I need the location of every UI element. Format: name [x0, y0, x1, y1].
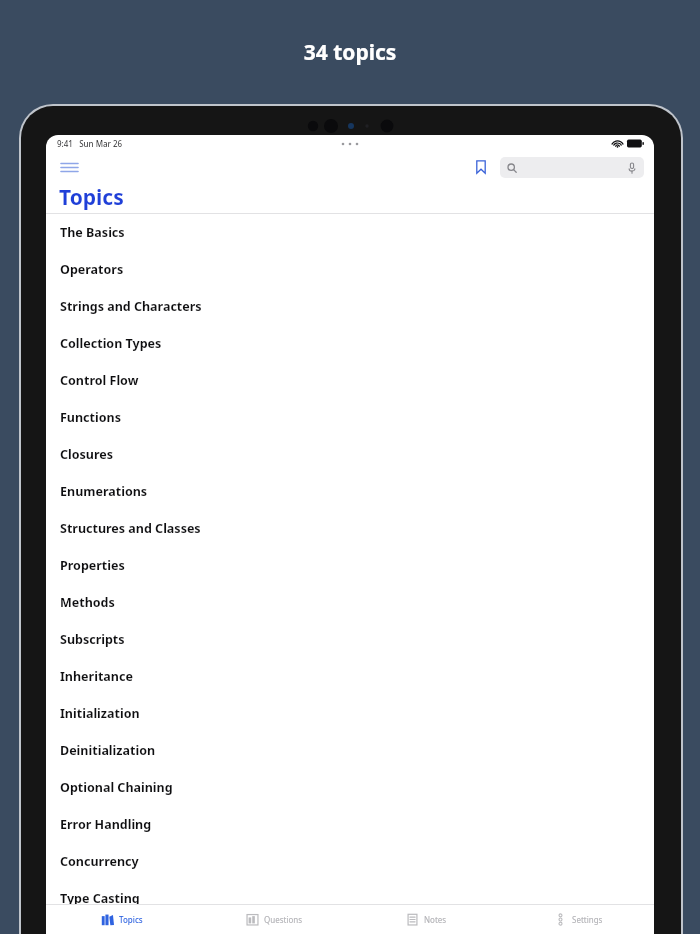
- button[interactable]: Operators: [46, 251, 654, 288]
- button[interactable]: Methods: [46, 584, 654, 621]
- button[interactable]: The Basics: [46, 214, 654, 251]
- staticText: Subscripts: [60, 631, 125, 648]
- button[interactable]: Properties: [46, 547, 654, 584]
- staticText: Properties: [60, 557, 125, 574]
- staticText: Type Casting: [60, 890, 140, 907]
- button[interactable]: Type Casting: [46, 880, 654, 917]
- staticText: Concurrency: [60, 853, 139, 870]
- button[interactable]: Error Handling: [46, 806, 654, 843]
- button[interactable]: Functions: [46, 399, 654, 436]
- button[interactable]: Search: [500, 157, 644, 178]
- button[interactable]: Notes: [350, 905, 502, 934]
- staticText: Inheritance: [60, 668, 133, 685]
- staticText: Topics: [119, 914, 143, 925]
- staticText: Strings and Characters: [60, 298, 202, 315]
- button[interactable]: Concurrency: [46, 843, 654, 880]
- staticText: Operators: [60, 261, 124, 278]
- button[interactable]: Subscripts: [46, 621, 654, 658]
- staticText: Enumerations: [60, 483, 148, 500]
- staticText: Control Flow: [60, 372, 139, 389]
- staticText: Notes: [424, 914, 447, 925]
- button[interactable]: Control Flow: [46, 362, 654, 399]
- button[interactable]: Strings and Characters: [46, 288, 654, 325]
- button[interactable]: Menu: [54, 152, 84, 182]
- staticText: Closures: [60, 446, 114, 463]
- button[interactable]: Bookmarks: [468, 154, 494, 180]
- button[interactable]: Inheritance: [46, 658, 654, 695]
- staticText: Optional Chaining: [60, 779, 173, 796]
- button[interactable]: Enumerations: [46, 473, 654, 510]
- staticText: 9:41 Sun Mar 26: [57, 138, 123, 149]
- staticText: Error Handling: [60, 816, 152, 833]
- staticText: The Basics: [60, 224, 125, 241]
- staticText: Settings: [572, 914, 603, 925]
- staticText: Questions: [264, 914, 303, 925]
- button[interactable]: Questions: [198, 905, 350, 934]
- staticText: 34 topics: [0, 38, 700, 67]
- button[interactable]: Initialization: [46, 695, 654, 732]
- button[interactable]: Topics: [46, 905, 198, 934]
- button[interactable]: Collection Types: [46, 325, 654, 362]
- button[interactable]: Optional Chaining: [46, 769, 654, 806]
- staticText: Structures and Classes: [60, 520, 201, 537]
- staticText: Collection Types: [60, 335, 162, 352]
- button[interactable]: Structures and Classes: [46, 510, 654, 547]
- staticText: Initialization: [60, 705, 140, 722]
- staticText: Methods: [60, 594, 115, 611]
- button[interactable]: Settings: [502, 905, 654, 934]
- staticText: Deinitialization: [60, 742, 156, 759]
- staticText: Functions: [60, 409, 121, 426]
- button[interactable]: Deinitialization: [46, 732, 654, 769]
- staticText: Topics: [59, 183, 124, 212]
- button[interactable]: Closures: [46, 436, 654, 473]
